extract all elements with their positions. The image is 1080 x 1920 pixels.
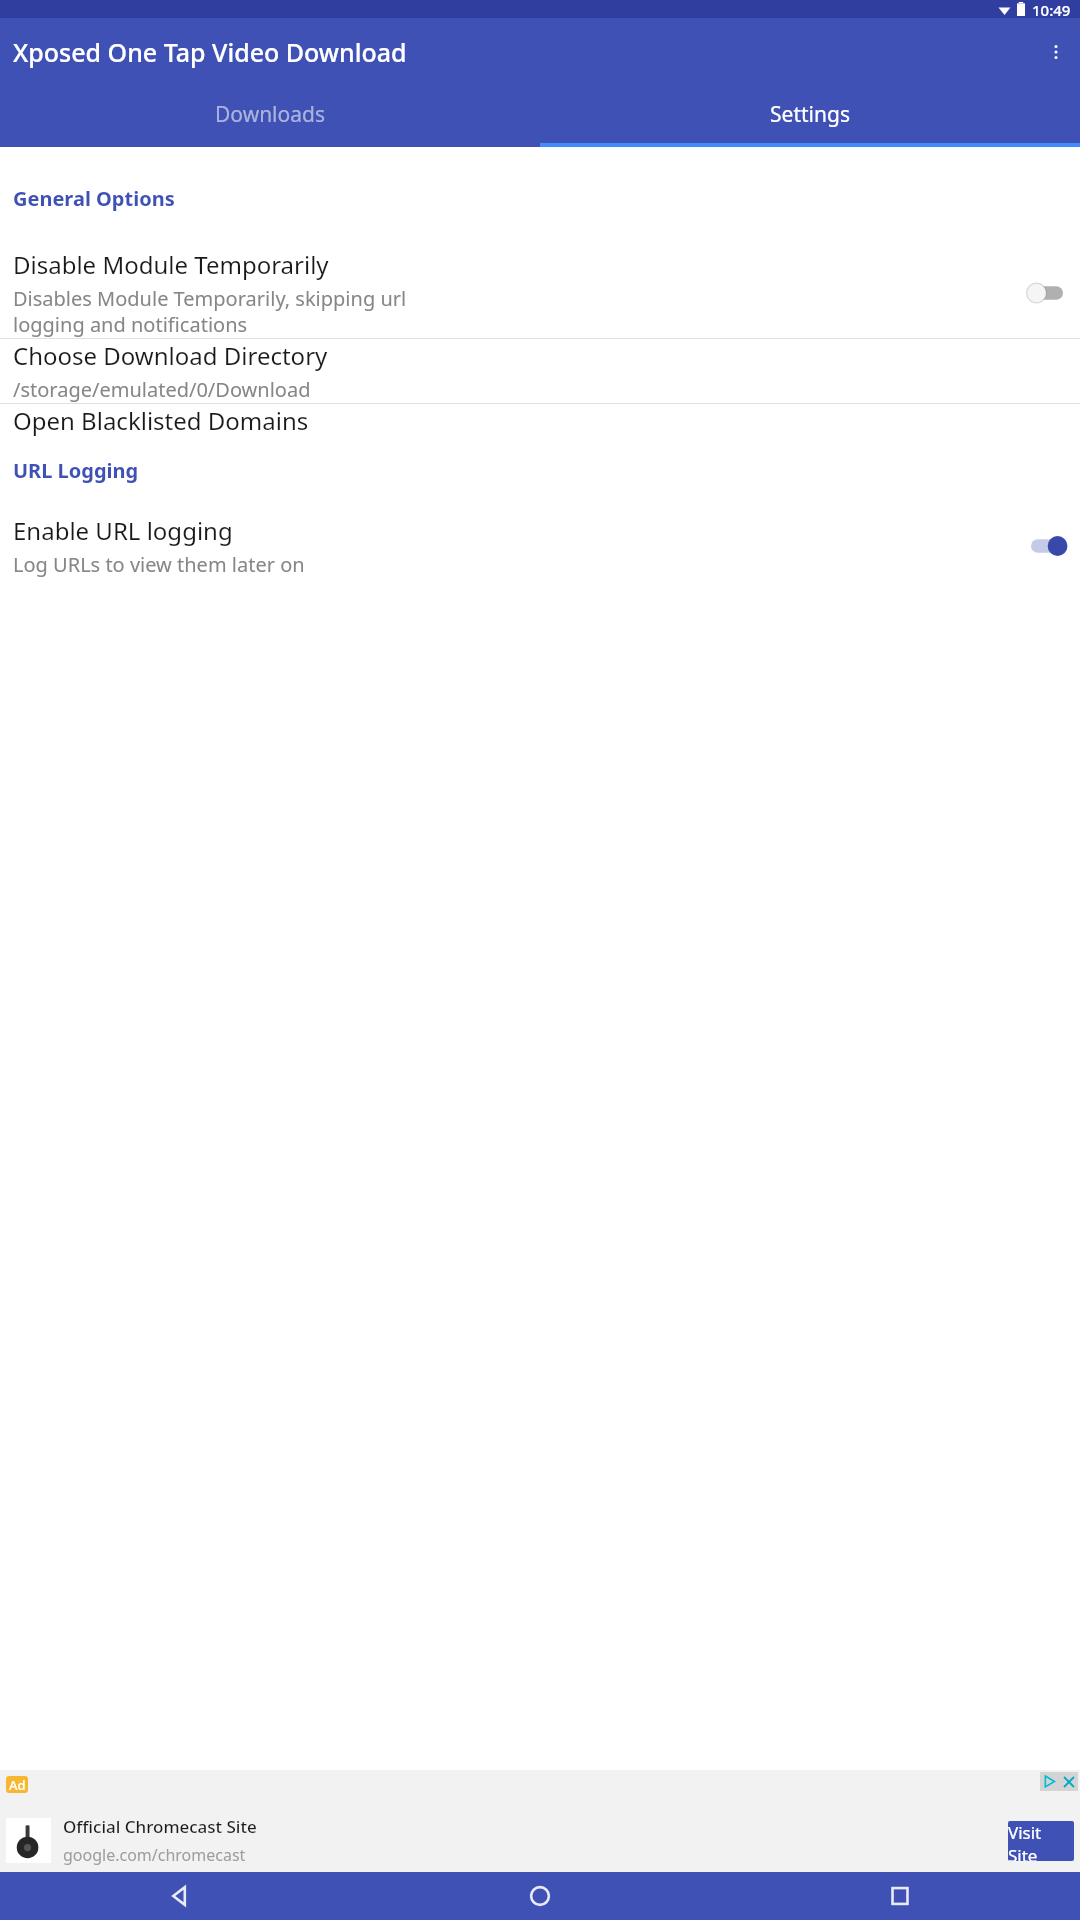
staticText: Log URLs to view them later on (13, 551, 305, 578)
staticText: /storage/emulated/0/Download (13, 376, 311, 403)
staticText: google.com/chromecast (63, 1844, 246, 1866)
button[interactable]: Settings (540, 86, 1080, 143)
staticText: Ad (9, 1776, 26, 1793)
staticText: URL Logging (13, 457, 139, 484)
button[interactable]: AdChoices (1040, 1772, 1059, 1791)
button[interactable]: Downloads (0, 86, 540, 143)
staticText: Downloads (215, 100, 325, 129)
button[interactable]: Open Blacklisted Domains (0, 404, 1080, 437)
button[interactable]: Home (360, 1872, 720, 1920)
staticText: Disable Module Temporarily (13, 248, 329, 281)
button[interactable]: Enable URL logging (0, 514, 1080, 578)
staticText: Xposed One Tap Video Download (13, 35, 407, 69)
button[interactable]: Choose Download Directory (0, 339, 1080, 403)
staticText: Enable URL logging (13, 514, 233, 547)
staticText: 10:49 (1032, 0, 1071, 18)
button[interactable]: Ad (0, 1770, 1080, 1872)
staticText: Disables Module Temporarily, skipping ur… (13, 285, 407, 338)
button[interactable]: Close ad (1059, 1772, 1078, 1791)
staticText: Official Chromecast Site (63, 1815, 257, 1838)
staticText: Visit Site (1008, 1821, 1074, 1861)
button[interactable]: Back (0, 1872, 360, 1920)
button[interactable]: Off (1027, 280, 1067, 306)
staticText: Open Blacklisted Domains (13, 404, 309, 437)
button[interactable]: Disable Module Temporarily (0, 248, 1080, 338)
staticText: General Options (13, 185, 175, 212)
staticText: Choose Download Directory (13, 339, 328, 372)
button[interactable]: Recent apps (720, 1872, 1080, 1920)
staticText: Settings (770, 100, 850, 129)
button[interactable]: On (1027, 533, 1067, 559)
button[interactable]: More options (1032, 28, 1080, 76)
button[interactable]: Visit Site (1008, 1821, 1074, 1861)
